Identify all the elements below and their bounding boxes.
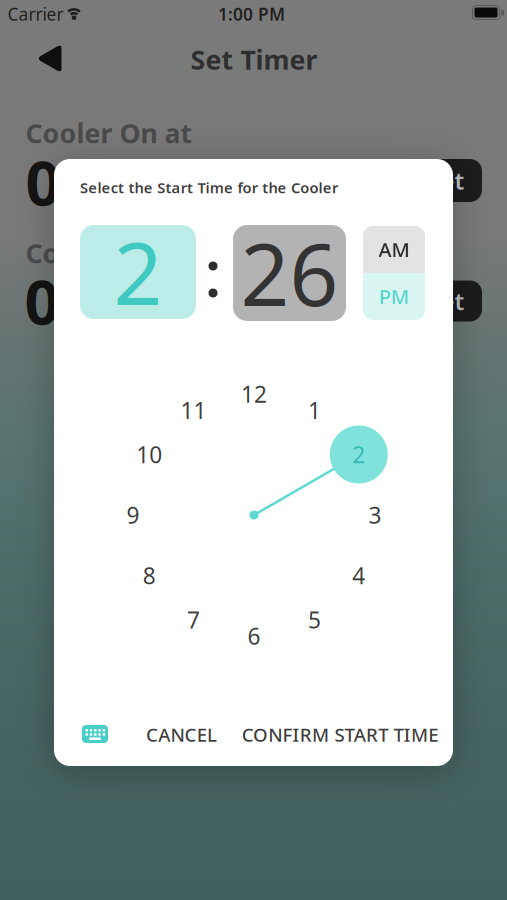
staticText: 2 [113,215,162,329]
button[interactable]: Back [37,44,62,72]
staticText: 8 [143,560,156,590]
staticText: 10 [136,439,162,469]
button[interactable]: 8 o'clock [143,560,156,590]
button[interactable]: 2 o'clock [352,439,365,469]
button[interactable]: 1 o'clock [308,395,321,425]
button[interactable]: AM [363,226,425,273]
staticText: 4 [352,560,365,590]
staticText: 3 [368,500,381,530]
staticText: 12 [241,379,267,409]
button[interactable]: 11 o'clock [180,395,206,425]
staticText: 5 [308,605,321,635]
staticText: 9 [126,500,139,530]
staticText: 2 [352,439,365,469]
staticText: Set Timer [190,42,317,77]
staticText: Cooler Off at [25,235,196,271]
button[interactable]: Minutes [233,225,346,321]
staticText: Set [427,165,464,196]
staticText: 02:26 PM [24,260,293,342]
button[interactable]: CONFIRM START TIME [242,722,438,747]
staticText: PM [379,283,409,310]
staticText: 7 [187,605,200,635]
staticText: Carrier [7,2,63,25]
staticText: 26 [240,216,338,330]
staticText: 02:26 PM [25,141,294,223]
button[interactable]: 9 o'clock [126,500,139,530]
button[interactable]: CANCEL [146,722,217,747]
button[interactable]: Set [410,280,482,321]
button[interactable]: Hour [80,225,196,319]
staticText: Cooler On at [25,115,192,151]
button[interactable]: 4 o'clock [352,560,365,590]
button[interactable]: 3 o'clock [368,500,381,530]
button[interactable]: 6 o'clock [247,621,260,651]
staticText: Select the Start Time for the Cooler [80,178,338,197]
button[interactable]: 10 o'clock [136,439,162,469]
button[interactable]: PM [363,273,425,320]
staticText: 1 [308,395,321,425]
staticText: 6 [247,621,260,651]
staticText: CANCEL [146,722,217,747]
button[interactable]: 5 o'clock [308,605,321,635]
staticText: Set [427,285,464,317]
staticText: AM [378,236,409,263]
button[interactable]: Set [410,159,482,202]
staticText: CONFIRM START TIME [242,722,438,747]
staticText: 1:00 PM [218,2,285,25]
button[interactable]: 7 o'clock [187,605,200,635]
button[interactable]: 12 o'clock [241,379,267,409]
staticText: 11 [180,395,206,425]
button[interactable]: Switch to keyboard input [82,725,108,743]
